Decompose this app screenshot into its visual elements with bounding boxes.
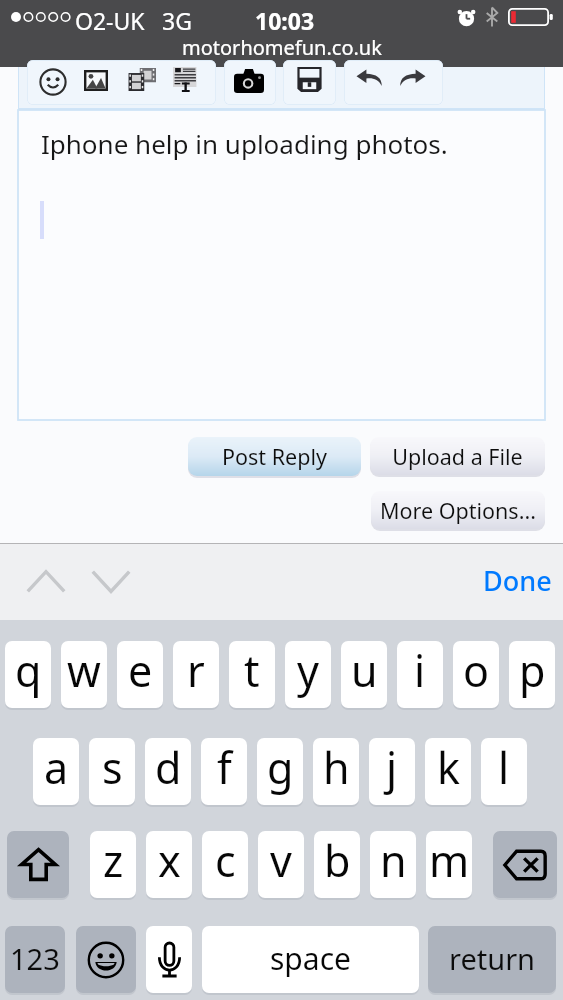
button[interactable]: o (453, 641, 499, 708)
button[interactable]: Next field (79, 554, 143, 606)
button[interactable]: Insert quote (172, 67, 198, 92)
staticText: n (380, 831, 407, 890)
staticText: k (437, 738, 460, 797)
staticText: space (270, 938, 351, 979)
button[interactable]: Post Reply (188, 437, 361, 476)
button[interactable]: Insert emoji (39, 68, 67, 96)
staticText: s (102, 738, 123, 797)
button[interactable]: b (314, 831, 360, 898)
button[interactable]: p (509, 641, 555, 708)
button[interactable]: return (428, 926, 556, 993)
button[interactable]: a (33, 738, 79, 805)
button[interactable]: t (229, 641, 275, 708)
button[interactable]: Emoji keyboard (76, 926, 136, 993)
button[interactable]: space (202, 926, 419, 993)
button[interactable]: h (313, 738, 359, 805)
button[interactable]: y (285, 641, 331, 708)
staticText: 10:03 (255, 5, 315, 36)
staticText: u (351, 641, 378, 700)
staticText: More Options... (380, 496, 536, 525)
staticText: a (44, 738, 69, 797)
staticText: Iphone help in uploading photos. (41, 126, 448, 161)
staticText: c (215, 831, 236, 890)
staticText: Done (483, 562, 552, 599)
staticText: x (158, 831, 181, 890)
staticText: l (498, 738, 510, 797)
staticText: w (67, 641, 101, 700)
staticText: g (267, 738, 294, 797)
button[interactable]: More Options... (371, 491, 545, 529)
staticText: t (244, 641, 260, 700)
button[interactable]: Previous field (14, 554, 78, 606)
button[interactable]: e (117, 641, 163, 708)
staticText: Upload a File (392, 442, 523, 471)
staticText: Post Reply (222, 442, 327, 471)
button[interactable]: k (425, 738, 471, 805)
button[interactable]: Take photo (234, 69, 264, 93)
button[interactable]: g (257, 738, 303, 805)
button[interactable]: v (258, 831, 304, 898)
button[interactable]: u (341, 641, 387, 708)
button[interactable]: Upload a File (370, 437, 545, 475)
button[interactable]: Backspace (493, 831, 557, 898)
staticText: 123 (10, 939, 60, 978)
button[interactable]: f (201, 738, 247, 805)
button[interactable]: Done (477, 553, 557, 607)
staticText: i (414, 641, 426, 700)
button[interactable]: s (89, 738, 135, 805)
staticText: y (297, 641, 319, 700)
button[interactable]: Shift (7, 831, 69, 898)
button[interactable]: d (145, 738, 191, 805)
staticText: return (449, 939, 536, 978)
button[interactable]: m (426, 831, 472, 898)
button[interactable]: Dictate (146, 926, 192, 993)
button[interactable]: c (202, 831, 248, 898)
button[interactable]: x (146, 831, 192, 898)
staticText: p (519, 641, 546, 700)
button[interactable]: i (397, 641, 443, 708)
staticText: 3G (162, 5, 192, 36)
button[interactable]: q (5, 641, 51, 708)
staticText: b (324, 831, 351, 890)
button[interactable]: w (61, 641, 107, 708)
button[interactable]: Insert video (128, 68, 156, 91)
staticText: z (103, 831, 124, 890)
staticText: v (270, 831, 292, 890)
staticText: e (128, 641, 153, 700)
staticText: q (15, 641, 42, 700)
staticText: j (386, 738, 398, 797)
staticText: d (155, 738, 182, 797)
button[interactable]: l (481, 738, 527, 805)
button[interactable]: Redo (400, 69, 426, 86)
button[interactable]: j (369, 738, 415, 805)
button[interactable]: Undo (356, 69, 382, 86)
staticText: f (217, 738, 232, 797)
staticText: r (187, 641, 205, 700)
button[interactable]: z (90, 831, 136, 898)
button[interactable]: n (370, 831, 416, 898)
button[interactable]: Save draft (297, 68, 322, 91)
button[interactable]: Insert image (84, 70, 108, 91)
staticText: o (463, 641, 490, 700)
staticText: motorhomefun.co.uk (182, 34, 382, 61)
button[interactable]: r (173, 641, 219, 708)
button[interactable]: 123 (5, 926, 65, 993)
staticText: O2-UK (75, 5, 145, 36)
staticText: m (429, 831, 470, 890)
staticText: h (323, 738, 350, 797)
